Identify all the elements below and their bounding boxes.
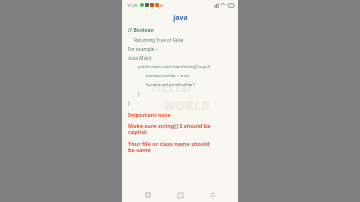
staticText: // Boolean — [128, 27, 154, 34]
staticText: System.out.print(isvihar); — [146, 82, 196, 88]
staticText: public static void main(String[] args){ — [138, 64, 211, 70]
staticText: 11:25 — [127, 3, 138, 8]
staticText: boolean isvihar = true; — [146, 73, 190, 79]
staticText: class Main{ — [128, 55, 152, 61]
staticText: Important note — [128, 111, 171, 118]
button[interactable]: Back — [206, 188, 220, 202]
button[interactable]: Home — [173, 188, 187, 202]
staticText: Make sure string[] S should be capital — [128, 122, 211, 136]
staticText: Your file or class name should be same — [128, 140, 210, 154]
staticText: } — [128, 100, 130, 106]
staticText: For example – — [128, 46, 158, 52]
staticText: java — [173, 13, 188, 23]
button[interactable]: Recents — [141, 188, 155, 202]
staticText: HELLO — [152, 78, 192, 96]
staticText: Returning True or False — [134, 37, 184, 43]
staticText: WORLD — [164, 96, 210, 114]
staticText: } — [138, 91, 140, 97]
